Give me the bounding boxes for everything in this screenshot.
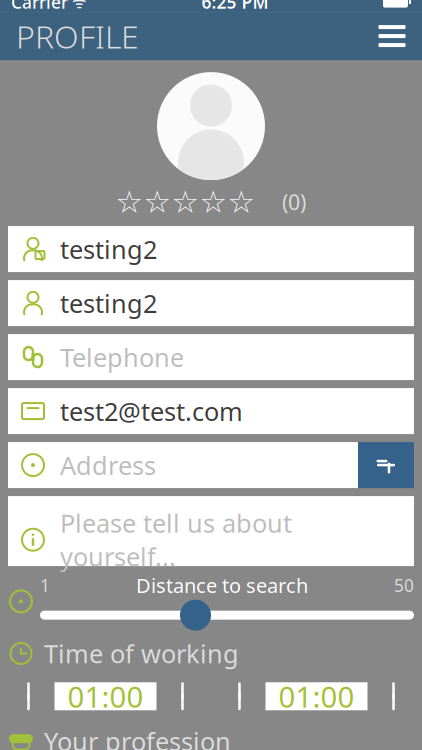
staticText: test2@test.com: [60, 394, 243, 428]
staticText: Carrier: [11, 0, 68, 14]
staticText: ★: [115, 185, 142, 219]
staticText: ★: [171, 185, 198, 219]
staticText: ★: [227, 185, 254, 219]
staticText: 6:25 PM: [201, 0, 268, 14]
staticText: ★: [143, 185, 170, 219]
button[interactable]: Use current location: [358, 442, 414, 488]
staticText: ☆: [199, 185, 226, 219]
staticText: ★: [199, 185, 226, 219]
button[interactable]: Next time: [163, 676, 197, 716]
button[interactable]: 01:00: [265, 682, 367, 710]
staticText: ★: [115, 185, 142, 219]
button[interactable]: Menu: [370, 14, 414, 58]
staticText: ★: [143, 185, 170, 219]
button[interactable]: Previous time: [225, 676, 259, 716]
staticText: 50: [394, 574, 414, 597]
staticText: 1: [40, 574, 50, 597]
staticText: ★: [171, 185, 198, 219]
button[interactable]: Telephone: [8, 334, 414, 380]
staticText: (0): [282, 188, 306, 216]
staticText: ★: [227, 185, 254, 219]
button[interactable]: testing2: [8, 226, 414, 272]
staticText: ☆: [143, 185, 170, 219]
staticText: ☆: [227, 185, 254, 219]
button[interactable]: test2@test.com: [8, 388, 414, 434]
button[interactable]: 01:00: [54, 682, 156, 710]
staticText: testing2: [60, 232, 157, 266]
staticText: Please tell us about yourself...: [60, 506, 292, 573]
button[interactable]: testing2: [8, 280, 414, 326]
button[interactable]: Please tell us about yourself...: [8, 496, 414, 566]
staticText: Address: [60, 448, 156, 482]
staticText: 01:00: [67, 677, 143, 716]
staticText: testing2: [60, 286, 157, 320]
staticText: ᯤ: [68, 0, 87, 13]
staticText: 01:00: [278, 677, 354, 716]
button[interactable]: Next time: [374, 676, 408, 716]
staticText: Time of working: [44, 637, 239, 670]
staticText: ★: [199, 185, 226, 219]
staticText: Your profession: [44, 724, 231, 750]
staticText: ☆: [115, 185, 142, 219]
staticText: ☆: [171, 185, 198, 219]
staticText: Telephone: [60, 340, 184, 374]
button[interactable]: Previous time: [14, 676, 48, 716]
staticText: Distance to search: [136, 572, 308, 599]
staticText: PROFILE: [16, 15, 139, 57]
